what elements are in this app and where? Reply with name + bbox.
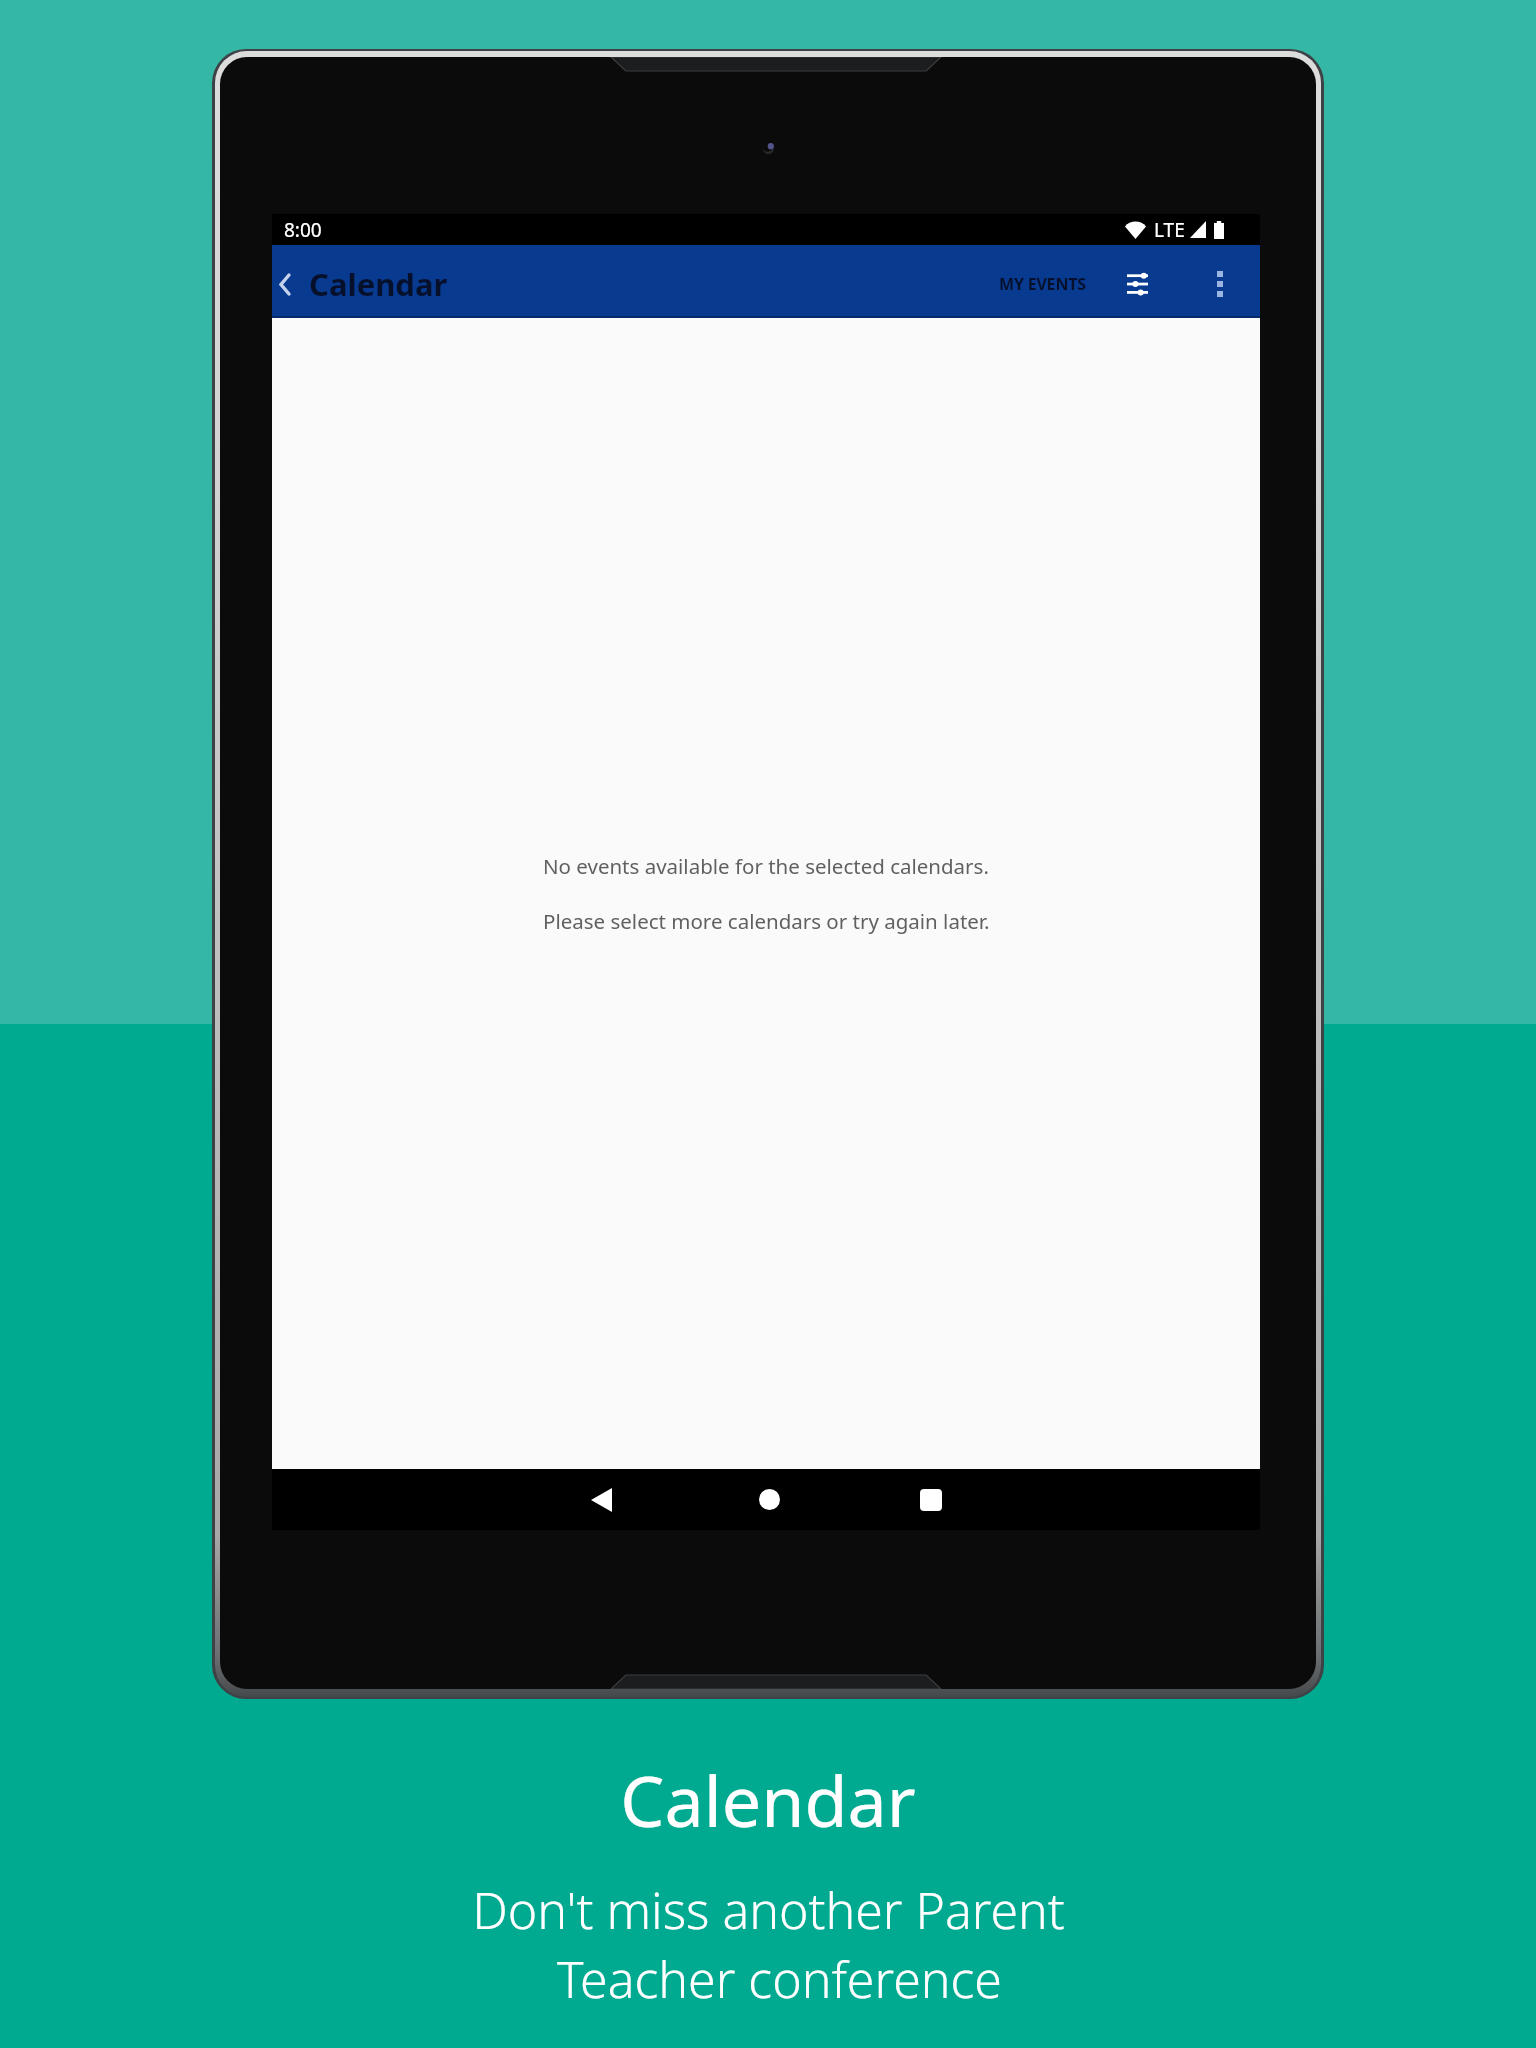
other: Back: [281, 275, 289, 294]
staticText: Please select more calendars or try agai…: [543, 907, 990, 935]
staticText: MY EVENTS: [999, 273, 1086, 295]
staticText: Calendar: [309, 263, 448, 305]
button[interactable]: Filter: [1113, 250, 1161, 318]
staticText: Don't miss another Parent: [472, 1876, 1065, 1944]
button[interactable]: MY EVENTS: [985, 257, 1103, 311]
button[interactable]: Recents: [876, 1469, 986, 1530]
staticText: Calendar: [620, 1752, 916, 1847]
staticText: Teacher conference: [557, 1945, 1002, 2013]
staticText: No events available for the selected cal…: [543, 852, 989, 880]
button[interactable]: Home: [714, 1469, 824, 1530]
staticText: 8:00: [284, 217, 322, 243]
staticText: LTE: [1154, 217, 1185, 243]
button[interactable]: More options: [1198, 250, 1242, 318]
button[interactable]: Back: [272, 250, 466, 318]
button[interactable]: Back: [546, 1469, 656, 1530]
